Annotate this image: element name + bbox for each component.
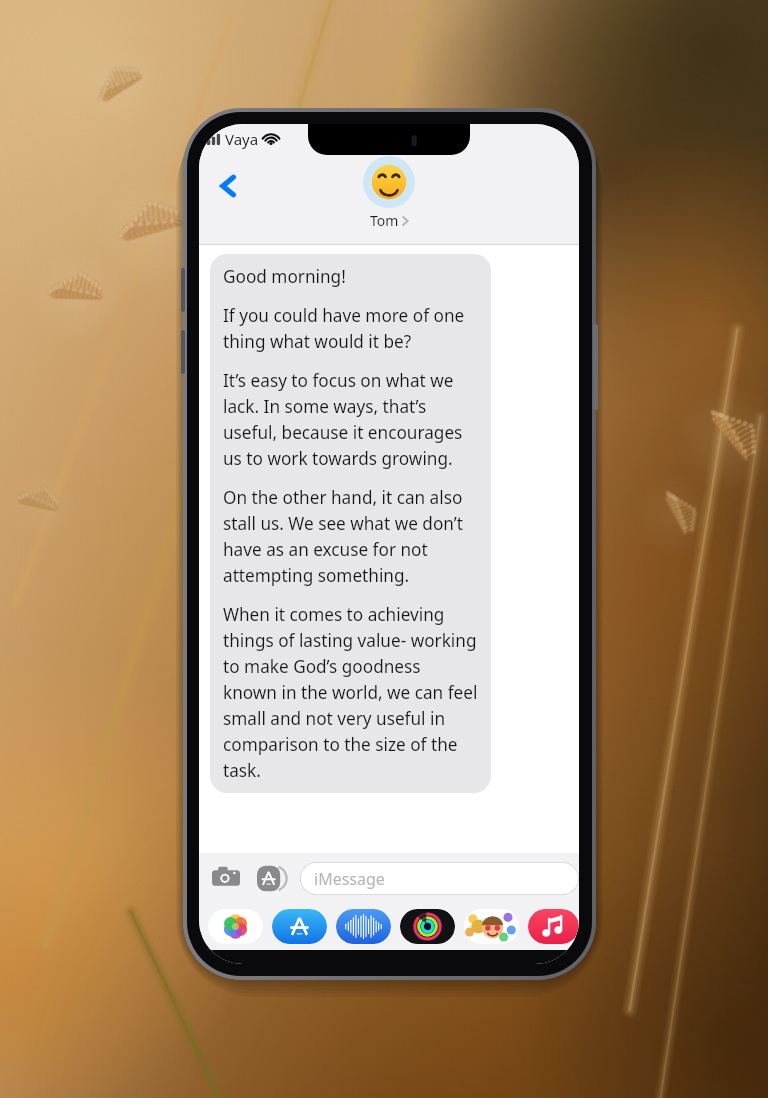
button[interactable]: Back xyxy=(207,164,251,208)
staticText: On the other hand, it can also stall us.… xyxy=(223,486,463,587)
staticText: Tom xyxy=(370,211,399,230)
button[interactable]: Good morning! xyxy=(210,254,491,793)
staticText: iMessage xyxy=(314,868,385,890)
button[interactable]: Audio messages xyxy=(336,909,391,944)
staticText: When it comes to achieving things of las… xyxy=(223,603,478,782)
staticText: Vaya xyxy=(225,129,259,149)
button[interactable]: Photos xyxy=(208,909,263,944)
button[interactable]: Apps xyxy=(253,860,289,896)
button[interactable]: App Store xyxy=(272,909,327,944)
button[interactable]: Memoji stickers xyxy=(464,909,519,944)
button[interactable]: Music xyxy=(528,909,579,944)
staticText: Good morning! xyxy=(223,265,346,288)
button[interactable]: Activity xyxy=(400,909,455,944)
button[interactable]: Camera xyxy=(208,860,244,896)
staticText: If you could have more of one thing what… xyxy=(223,304,465,353)
button[interactable]: Tom xyxy=(363,156,415,230)
button[interactable]: iMessage xyxy=(300,862,579,895)
staticText: It’s easy to focus on what we lack. In s… xyxy=(223,369,463,470)
